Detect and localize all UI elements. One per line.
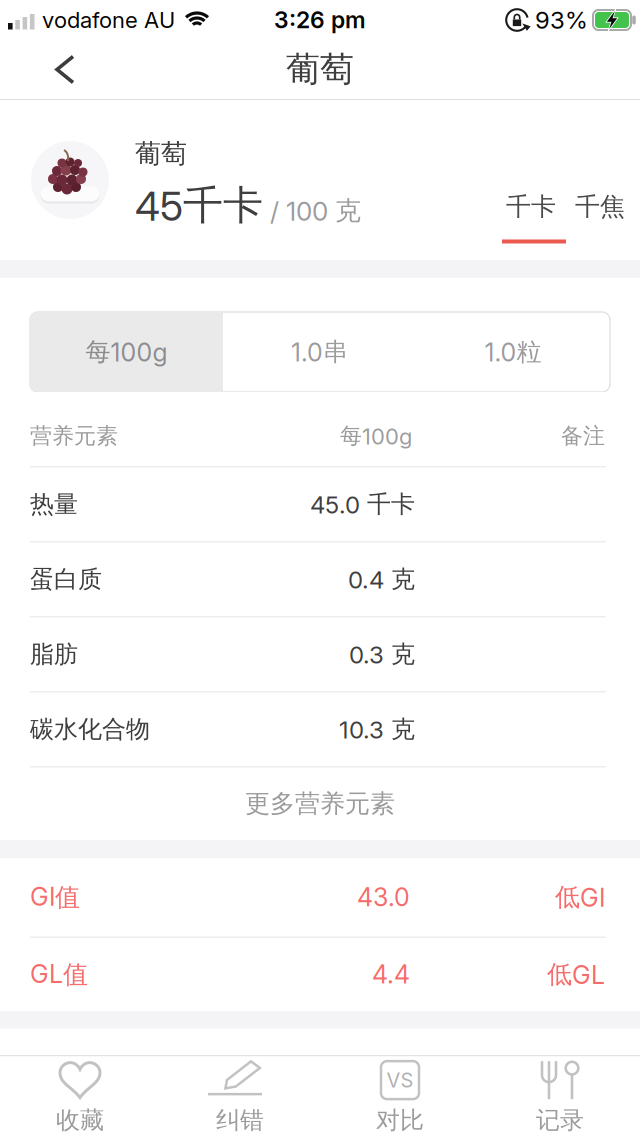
staticText: 脂肪	[30, 639, 78, 669]
staticText: 45千卡	[135, 180, 263, 231]
staticText: 1.0串	[291, 336, 348, 368]
staticText: 1.0粒	[484, 336, 541, 368]
button[interactable]: 每100g	[30, 312, 223, 392]
staticText: 千焦	[575, 191, 625, 222]
staticText: 每100g	[85, 336, 167, 368]
staticText: 葡萄	[286, 48, 354, 91]
staticText: 记录	[536, 1105, 584, 1135]
button[interactable]: 纠错	[160, 1056, 320, 1139]
staticText: 低GI	[555, 881, 605, 913]
button[interactable]: 记录	[480, 1056, 640, 1139]
staticText: 4.4	[372, 959, 410, 990]
staticText: 93%	[535, 5, 588, 34]
staticText: VS	[386, 1068, 413, 1092]
staticText: 45.0 千卡	[310, 489, 415, 519]
staticText: 蛋白质	[30, 564, 102, 594]
staticText: 收藏	[56, 1105, 104, 1135]
button[interactable]: 1.0串	[223, 312, 416, 392]
button[interactable]: 更多营养元素	[0, 767, 640, 840]
staticText: 葡萄	[135, 137, 187, 170]
button[interactable]: 千焦	[575, 191, 625, 222]
staticText: vodafone AU	[42, 7, 175, 33]
staticText: 更多营养元素	[245, 788, 395, 819]
staticText: 3:26 pm	[274, 6, 366, 34]
staticText: 0.3 克	[349, 639, 415, 669]
button[interactable]: 收藏	[0, 1056, 160, 1139]
button[interactable]: 千卡	[506, 191, 556, 222]
staticText: / 100 克	[270, 194, 361, 227]
staticText: 每100g	[340, 422, 412, 450]
staticText: 备注	[561, 422, 605, 450]
staticText: 千卡	[506, 191, 556, 222]
staticText: 纠错	[216, 1105, 264, 1135]
button[interactable]: VS	[320, 1056, 480, 1139]
staticText: 43.0	[357, 882, 410, 912]
button[interactable]: 1.0粒	[416, 312, 610, 392]
staticText: 营养元素	[30, 422, 118, 450]
staticText: 碳水化合物	[30, 714, 150, 744]
staticText: 0.4 克	[348, 564, 415, 594]
staticText: GL值	[30, 959, 88, 990]
staticText: 对比	[376, 1105, 424, 1135]
staticText: 10.3 克	[339, 714, 415, 744]
staticText: 低GL	[547, 959, 605, 990]
button[interactable]: Back	[0, 40, 99, 98]
staticText: 热量	[30, 489, 78, 519]
staticText: GI值	[30, 881, 80, 913]
